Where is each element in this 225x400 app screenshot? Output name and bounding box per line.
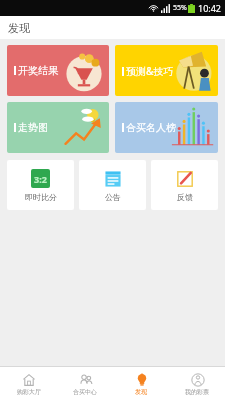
staticText: 10:42 [198,2,222,14]
button[interactable]: 购彩大厅 [0,367,57,400]
staticText: 反馈 [177,192,193,202]
staticText: 合买名人榜 [126,121,176,134]
other: 购彩大厅 [22,373,36,387]
staticText: 我的彩票 [185,388,209,396]
staticText: 开奖结果 [18,64,58,77]
button[interactable]: 合买名人榜 [115,102,218,153]
button[interactable]: 预测&技巧 [115,45,218,96]
button[interactable]: 反馈 [151,160,218,210]
other: 我的彩票 [191,373,205,387]
staticText: 预测&技巧 [126,64,174,78]
staticText: 公告 [105,192,121,202]
button[interactable]: 走势图 [7,102,109,153]
other: 合买中心 [79,373,93,387]
button[interactable]: 公告 [79,160,146,210]
button[interactable]: 合买中心 [57,367,113,400]
staticText: 合买中心 [73,388,97,396]
staticText: 发现 [8,21,30,35]
staticText: 走势图 [18,121,48,134]
button[interactable]: 开奖结果 [7,45,109,96]
staticText: 3:2 [34,173,47,185]
button[interactable]: 发现 [113,367,169,400]
staticText: 即时比分 [25,192,57,202]
other: 发现 [135,373,149,387]
button[interactable]: 3:2 [7,160,74,210]
button[interactable]: 我的彩票 [169,367,225,400]
staticText: 发现 [135,388,147,396]
staticText: 购彩大厅 [17,388,41,396]
staticText: 55% [173,3,187,13]
